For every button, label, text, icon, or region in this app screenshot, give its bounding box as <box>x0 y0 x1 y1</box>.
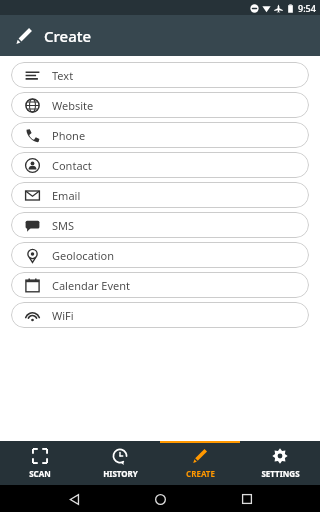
button[interactable]: CREATE <box>160 441 240 485</box>
staticText: Create <box>44 26 92 46</box>
staticText: Website <box>52 98 94 113</box>
staticText: SETTINGS <box>261 468 300 479</box>
button[interactable]: SMS <box>11 212 309 238</box>
button[interactable]: HISTORY <box>80 441 160 485</box>
button[interactable]: Text <box>11 62 309 88</box>
staticText: Text <box>52 68 74 83</box>
button[interactable]: Recents <box>234 486 260 512</box>
staticText: Calendar Event <box>52 278 130 293</box>
staticText: HISTORY <box>103 468 138 479</box>
button[interactable]: Email <box>11 182 309 208</box>
staticText: SCAN <box>29 468 51 479</box>
button[interactable]: WiFi <box>11 302 309 328</box>
button[interactable]: Home <box>147 486 173 512</box>
button[interactable]: Back <box>61 486 87 512</box>
button[interactable]: Phone <box>11 122 309 148</box>
button[interactable]: Contact <box>11 152 309 178</box>
staticText: Geolocation <box>52 248 115 263</box>
staticText: Phone <box>52 128 86 143</box>
button[interactable]: Calendar Event <box>11 272 309 298</box>
staticText: 9:54 <box>298 2 316 14</box>
staticText: Contact <box>52 158 92 173</box>
button[interactable]: Website <box>11 92 309 118</box>
button[interactable]: Geolocation <box>11 242 309 268</box>
button[interactable]: SCAN <box>0 441 80 485</box>
staticText: CREATE <box>186 468 215 479</box>
button[interactable]: SETTINGS <box>240 441 320 485</box>
staticText: Email <box>52 188 81 203</box>
staticText: SMS <box>52 218 75 233</box>
button[interactable]: Create <box>8 20 40 52</box>
staticText: WiFi <box>52 308 74 323</box>
